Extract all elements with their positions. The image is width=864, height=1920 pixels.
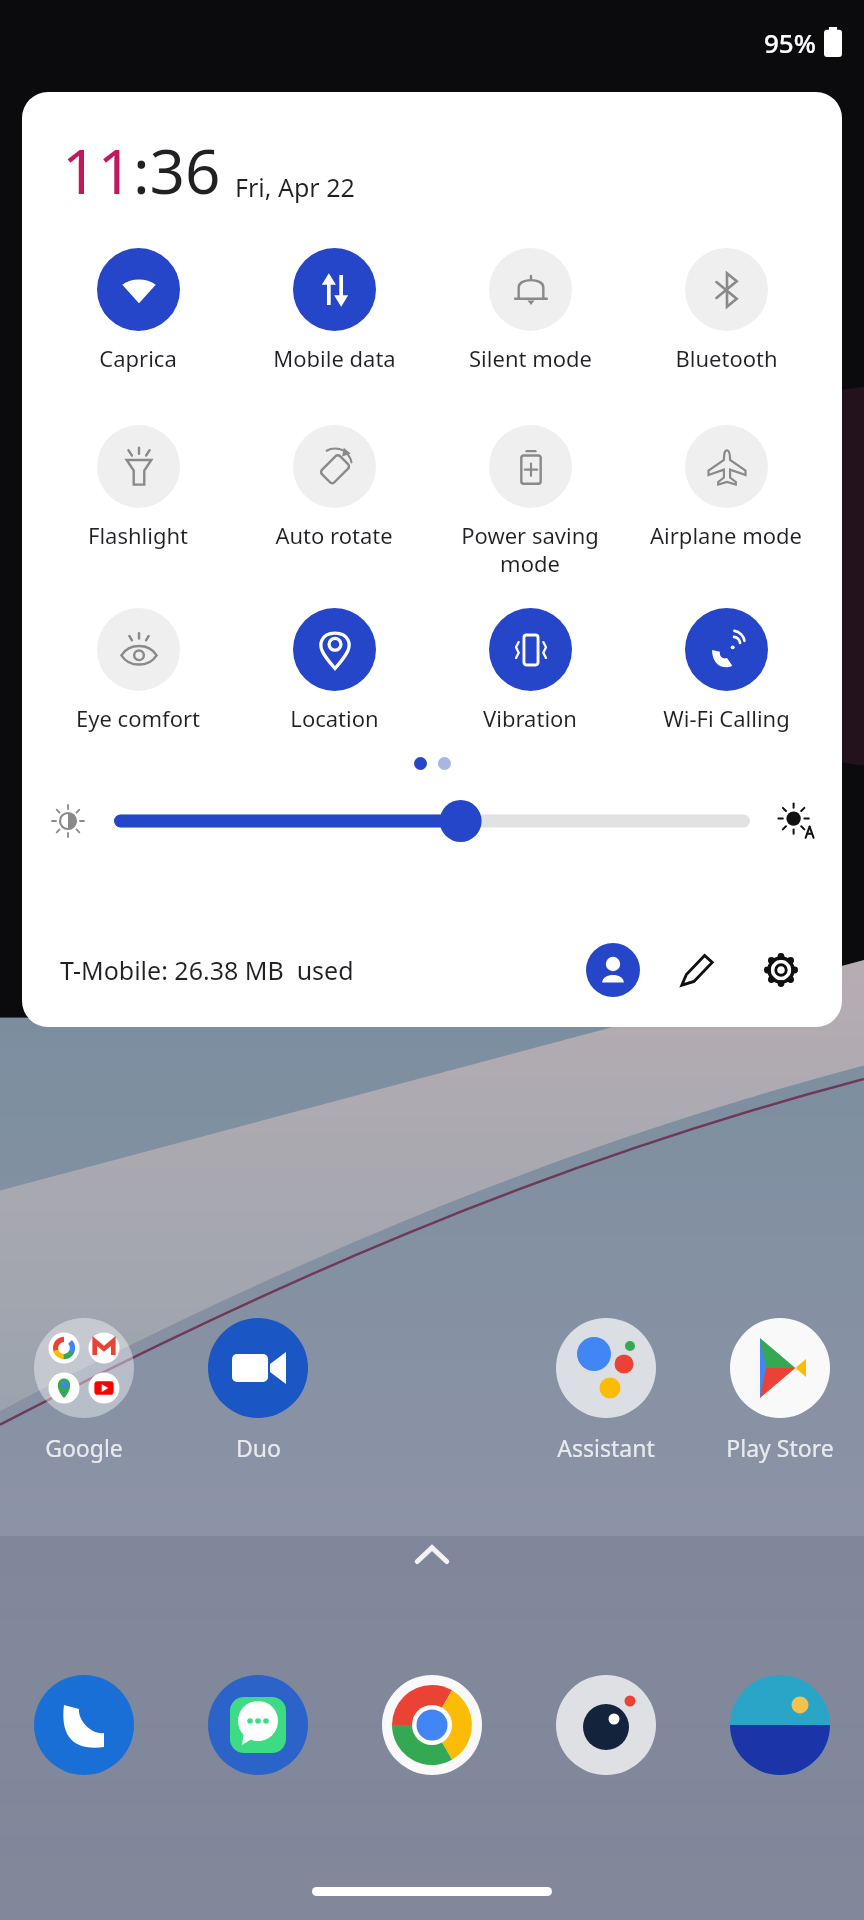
button[interactable]: Auto rotate <box>236 425 432 550</box>
staticText: Fri, Apr 22 <box>235 170 355 204</box>
staticText: Vibration <box>483 703 577 733</box>
staticText: Power saving mode <box>461 520 599 578</box>
staticText: Silent mode <box>469 343 592 373</box>
staticText: Bluetooth <box>675 343 778 373</box>
button[interactable] <box>114 798 750 844</box>
button[interactable]: Play Store <box>714 1318 846 1463</box>
button[interactable]: Duo <box>192 1318 324 1463</box>
staticText: Wi-Fi Calling <box>663 703 790 733</box>
staticText: 11:36 <box>62 128 221 212</box>
staticText: Eye comfort <box>76 703 200 733</box>
staticText: Airplane mode <box>650 520 802 550</box>
button[interactable]: Mobile data <box>236 248 432 373</box>
staticText: Duo <box>236 1432 281 1463</box>
button[interactable]: Messages <box>208 1675 308 1775</box>
staticText: Auto rotate <box>275 520 393 550</box>
staticText: Play Store <box>726 1432 834 1463</box>
staticText: Location <box>290 703 379 733</box>
button[interactable]: Camera <box>556 1675 656 1775</box>
other: App drawer <box>409 1533 455 1579</box>
button[interactable]: Chrome <box>382 1675 482 1775</box>
button[interactable]: Caprica <box>40 248 236 373</box>
staticText: T-Mobile: 26.38 MB used <box>60 953 354 987</box>
button[interactable]: Power saving mode <box>432 425 628 578</box>
button[interactable]: Phone <box>34 1675 134 1775</box>
other: Low brightness <box>48 801 88 841</box>
button[interactable]: Airplane mode <box>628 425 824 550</box>
button[interactable]: Edit <box>670 943 724 997</box>
button[interactable]: Assistant <box>540 1318 672 1463</box>
button[interactable]: Gallery <box>730 1675 830 1775</box>
staticText: Assistant <box>557 1432 655 1463</box>
button[interactable]: Location <box>236 608 432 733</box>
staticText: Mobile data <box>273 343 396 373</box>
staticText: Flashlight <box>88 520 188 550</box>
button[interactable]: Eye comfort <box>40 608 236 733</box>
button[interactable]: Settings <box>754 943 808 997</box>
staticText: Google <box>45 1432 123 1463</box>
other: Auto brightness <box>776 801 816 841</box>
staticText: Caprica <box>99 343 177 373</box>
button[interactable]: Vibration <box>432 608 628 733</box>
button[interactable]: Bluetooth <box>628 248 824 373</box>
button[interactable]: Silent mode <box>432 248 628 373</box>
staticText: 95% <box>764 25 816 60</box>
button[interactable]: Wi-Fi Calling <box>628 608 824 733</box>
button[interactable]: Flashlight <box>40 425 236 550</box>
button[interactable]: User <box>586 943 640 997</box>
button[interactable]: Google <box>18 1318 150 1463</box>
